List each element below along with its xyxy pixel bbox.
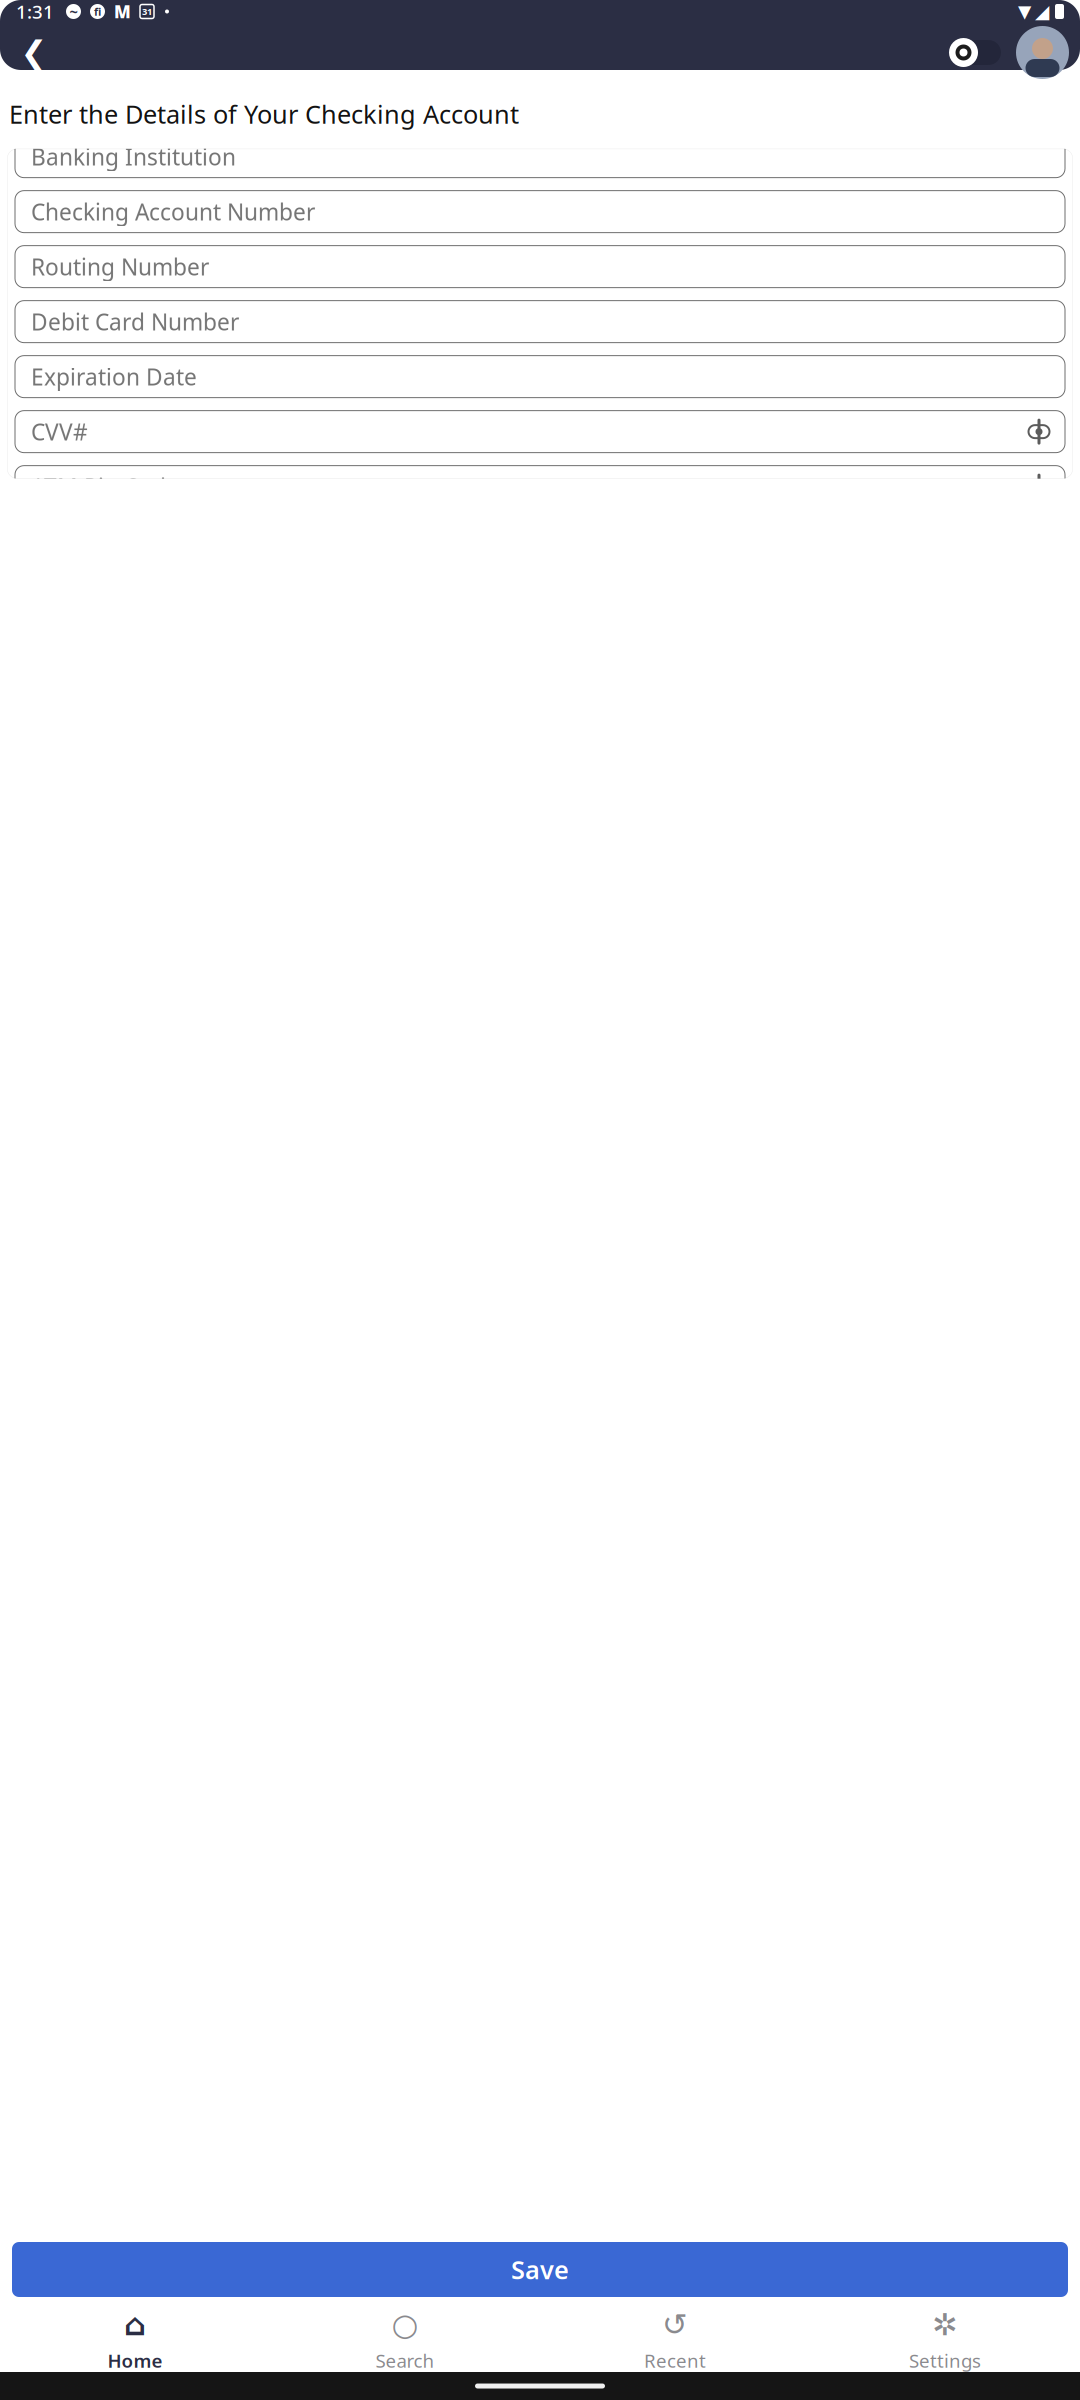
staticText: M [114, 0, 131, 23]
staticText: ◢ [1035, 1, 1049, 22]
staticText: Search [375, 2348, 434, 2373]
button[interactable]: ATM Pin Code [15, 466, 1065, 508]
button[interactable]: Checking Account Number [15, 191, 1065, 233]
button[interactable]: Debit Card Number [15, 301, 1065, 343]
button[interactable]: CVV# [15, 411, 1065, 453]
staticText: ⌂ [124, 2307, 146, 2342]
staticText: ○ [391, 2307, 418, 2342]
staticText: ▼ [1018, 2, 1031, 21]
staticText: Settings [909, 2348, 981, 2373]
staticText: ↺ [662, 2307, 688, 2342]
button[interactable]: ⌂ [0, 2308, 270, 2372]
staticText: Checking Account Type [29, 67, 187, 86]
staticText: ~ [69, 2, 77, 21]
button[interactable]: Expiration Date [15, 356, 1065, 398]
staticText: CVV# [31, 417, 88, 447]
button[interactable]: ○ [270, 2308, 540, 2372]
staticText: ATM Pin Code [31, 472, 179, 502]
button[interactable]: ↺ [540, 2308, 810, 2372]
staticText: Home [107, 2348, 162, 2373]
staticText: ❮ [20, 34, 47, 71]
staticText: Checking Account Number [31, 197, 315, 227]
button[interactable]: Checking Account Type [15, 73, 1065, 123]
staticText: Debit Card Number [31, 307, 239, 337]
staticText: Expiration Date [31, 362, 197, 392]
staticText: fi [94, 4, 101, 19]
staticText: Recent [644, 2348, 706, 2373]
staticText: Banking Institution [31, 142, 236, 172]
button[interactable]: Banking Institution [15, 136, 1065, 178]
staticText: 1:31 [16, 0, 54, 24]
button[interactable]: ✲ [810, 2308, 1080, 2372]
button[interactable]: Routing Number [15, 246, 1065, 288]
staticText: Checking Account Type [31, 82, 295, 114]
button[interactable]: Back [11, 29, 57, 75]
staticText: 31 [142, 5, 152, 18]
staticText: Save [511, 2253, 569, 2286]
button[interactable]: Profile [1004, 26, 1069, 79]
staticText: Enter the Details of Your Checking Accou… [9, 97, 519, 131]
staticText: Routing Number [31, 252, 209, 282]
button[interactable]: Save [12, 2242, 1068, 2297]
button[interactable]: Toggle theme [946, 29, 1004, 75]
staticText: ✲ [932, 2307, 958, 2342]
